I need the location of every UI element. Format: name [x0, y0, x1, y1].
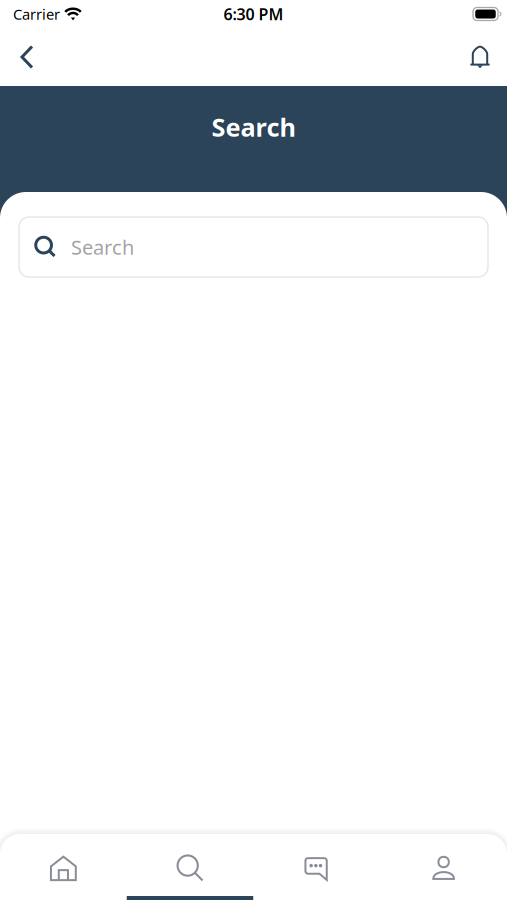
button[interactable]: Back: [3, 32, 51, 82]
staticText: 6:30 PM: [223, 3, 283, 25]
staticText: Search: [211, 110, 295, 144]
button[interactable]: Messages: [253, 834, 380, 900]
staticText: Search: [71, 234, 134, 260]
staticText: Carrier: [13, 4, 60, 24]
button[interactable]: Profile: [380, 834, 507, 900]
button[interactable]: Search: [19, 217, 488, 277]
button[interactable]: Search: [127, 834, 254, 900]
button[interactable]: Notifications: [456, 32, 504, 82]
button[interactable]: Home: [0, 834, 127, 900]
